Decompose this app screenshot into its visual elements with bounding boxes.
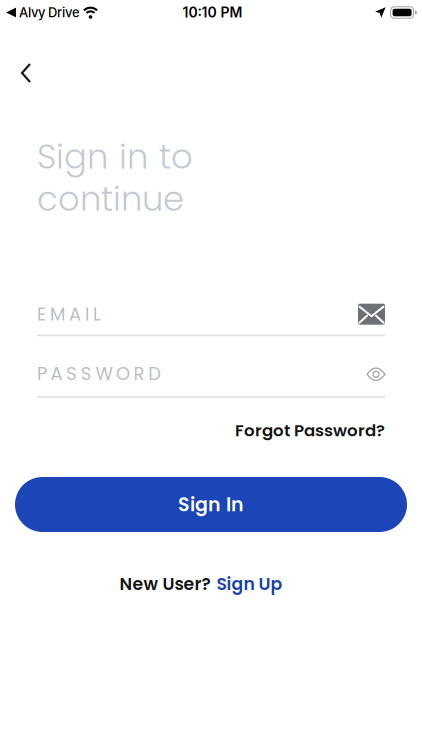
staticText: R [134,361,145,386]
staticText: O [116,361,130,386]
staticText: D [148,361,161,386]
staticText: Sign Up [216,572,282,596]
staticText: M [50,302,65,327]
button[interactable]: Sign Up [216,572,282,596]
staticText: A [69,302,81,327]
staticText: continue [37,175,184,223]
button[interactable]: Forgot Password? [235,419,385,442]
staticText: W [95,361,112,386]
staticText: A [51,361,63,386]
staticText: I [85,302,89,327]
staticText: Sign In [178,491,244,518]
staticText: L [93,302,101,327]
button[interactable]: Show password [367,368,385,381]
staticText: E [37,302,46,327]
staticText: S [66,361,77,386]
staticText: 10:10 PM [182,4,242,21]
staticText: S [81,361,92,386]
staticText: P [37,361,47,386]
button[interactable]: Sign In [15,477,407,532]
button[interactable]: Back [0,23,31,83]
staticText: New User? [119,572,210,596]
staticText: Forgot Password? [235,419,385,442]
staticText: Alvy Drive [19,5,80,20]
staticText: Sign in to [37,133,193,180]
